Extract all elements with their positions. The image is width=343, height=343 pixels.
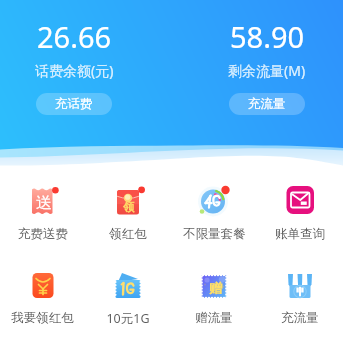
staticText: 剩余流量(M): [228, 61, 306, 80]
staticText: 我要领红包: [11, 310, 74, 326]
staticText: 领: [123, 200, 135, 214]
staticText: 赠流量: [195, 310, 233, 326]
staticText: 账单查询: [275, 226, 325, 242]
button[interactable]: 赠: [171, 269, 257, 330]
staticText: 赠: [209, 280, 222, 296]
staticText: 充话费: [55, 96, 93, 112]
staticText: 领红包: [109, 226, 147, 242]
staticText: 不限量套餐: [183, 226, 246, 242]
button[interactable]: 充流量: [229, 93, 305, 115]
button[interactable]: 我要领红包: [0, 269, 85, 330]
staticText: 话费余额(元): [35, 61, 114, 80]
staticText: 10元1G: [106, 310, 150, 327]
button[interactable]: 送: [0, 182, 85, 246]
staticText: 充流量: [281, 310, 319, 326]
button[interactable]: 充话费: [36, 93, 112, 115]
staticText: 26.66: [37, 17, 112, 56]
staticText: 充流量: [248, 96, 286, 112]
button[interactable]: 10元1G: [85, 269, 171, 330]
button[interactable]: 充流量: [257, 269, 343, 330]
staticText: 送: [36, 193, 52, 213]
staticText: 58.90: [230, 17, 305, 56]
button[interactable]: 不限量套餐: [171, 182, 257, 246]
button[interactable]: 领: [85, 182, 171, 246]
staticText: 充费送费: [18, 226, 68, 242]
button[interactable]: 账单查询: [257, 182, 343, 246]
